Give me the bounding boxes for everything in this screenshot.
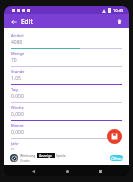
staticText: Woche	[11, 105, 24, 110]
staticText: 0,000	[11, 111, 24, 118]
staticText: 10:45	[113, 8, 124, 13]
staticText: Öffnen	[111, 156, 123, 161]
button[interactable]: Öffnen	[110, 155, 123, 161]
button[interactable]: Back	[8, 16, 19, 27]
staticText: Gratis	[20, 158, 30, 163]
button[interactable]: Werbung	[8, 152, 125, 163]
staticText: 0,000	[11, 129, 24, 136]
staticText: Menge	[11, 51, 25, 56]
staticText: Monat	[11, 123, 24, 128]
staticText: Edit	[21, 17, 33, 26]
staticText: Tag	[11, 87, 18, 92]
staticText: 4080	[11, 39, 23, 46]
button[interactable]: Artikel	[11, 31, 122, 49]
staticText: Anzeige	[39, 153, 53, 158]
staticText: 0,000	[11, 93, 24, 100]
staticText: Stunde	[11, 69, 25, 74]
button[interactable]: Back	[28, 166, 38, 176]
staticText: 70	[11, 57, 17, 64]
button[interactable]: Monat	[11, 121, 122, 139]
staticText: Spiele	[56, 153, 66, 158]
button[interactable]: Home	[62, 166, 72, 176]
staticText: 0	[11, 147, 14, 150]
button[interactable]: Woche	[11, 103, 122, 121]
button[interactable]: Stunde	[11, 67, 122, 85]
button[interactable]: Menge	[11, 49, 122, 67]
button[interactable]: Jahr	[11, 139, 122, 150]
button[interactable]: Save	[107, 129, 122, 144]
button[interactable]: Tag	[11, 85, 122, 103]
button[interactable]: Delete	[114, 16, 125, 27]
staticText: Jahr	[11, 141, 19, 146]
staticText: Artikel	[11, 33, 24, 38]
button[interactable]: Recents	[95, 166, 105, 176]
staticText: Werbung	[20, 153, 36, 158]
staticText: 1,05	[11, 75, 21, 82]
